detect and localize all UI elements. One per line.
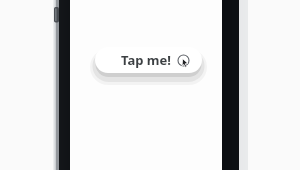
other: Tap pointer [177,54,190,67]
staticText: Tap me! [121,51,171,69]
button[interactable]: Tap me! [95,47,202,73]
